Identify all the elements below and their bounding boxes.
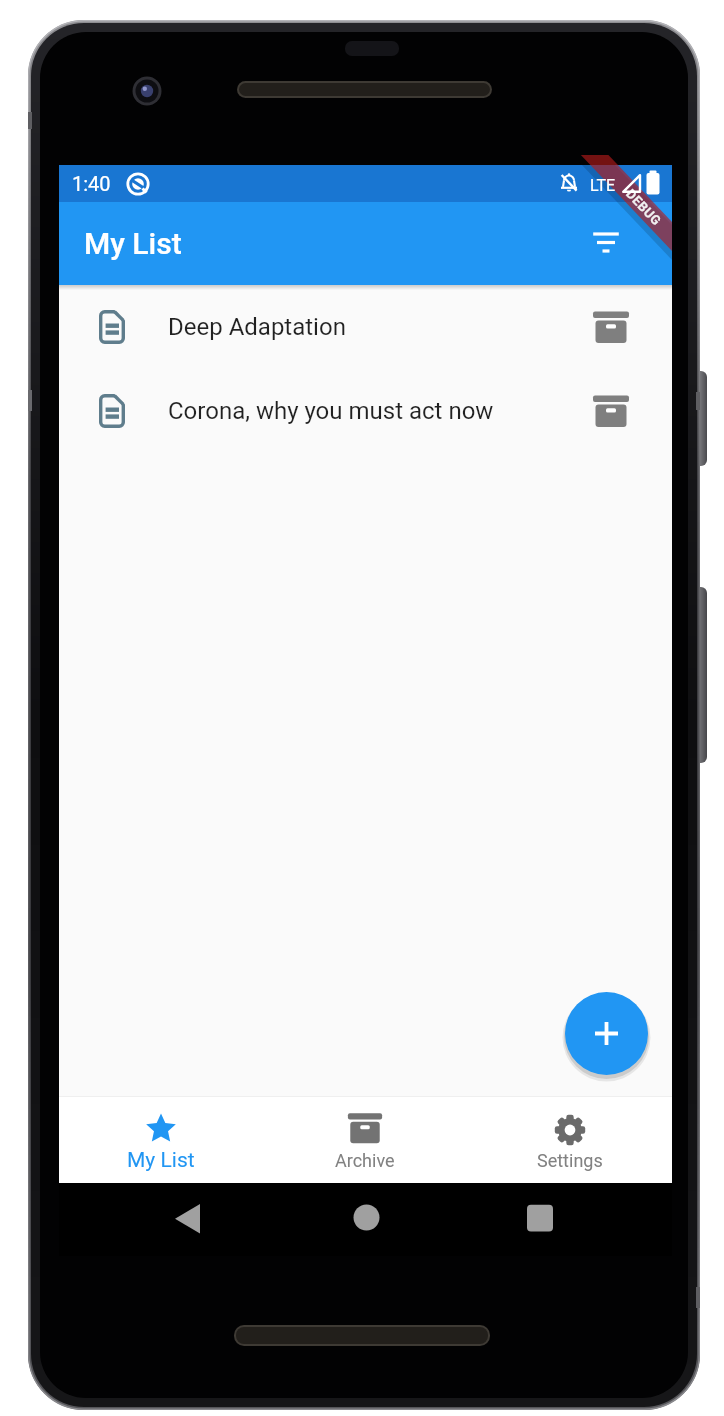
button[interactable]: Settings: [468, 1097, 672, 1183]
button[interactable]: [578, 378, 644, 444]
button[interactable]: [336, 1188, 398, 1250]
staticText: 1:40: [72, 172, 111, 195]
staticText: My List: [84, 226, 182, 261]
staticText: DEBUG: [623, 186, 664, 228]
staticText: My List: [127, 1148, 195, 1173]
button[interactable]: [578, 294, 644, 360]
button[interactable]: [565, 992, 648, 1075]
button[interactable]: Corona, why you must act now: [59, 369, 672, 453]
button[interactable]: Archive: [263, 1097, 467, 1183]
button[interactable]: Deep Adaptation: [59, 285, 672, 369]
button[interactable]: [155, 1188, 217, 1250]
staticText: Deep Adaptation: [168, 313, 346, 341]
staticText: Archive: [335, 1150, 395, 1171]
button[interactable]: My List: [59, 1097, 263, 1183]
button[interactable]: [572, 209, 640, 277]
staticText: Settings: [537, 1150, 603, 1171]
button[interactable]: [509, 1188, 571, 1250]
staticText: LTE: [590, 176, 616, 195]
staticText: Corona, why you must act now: [168, 397, 494, 425]
